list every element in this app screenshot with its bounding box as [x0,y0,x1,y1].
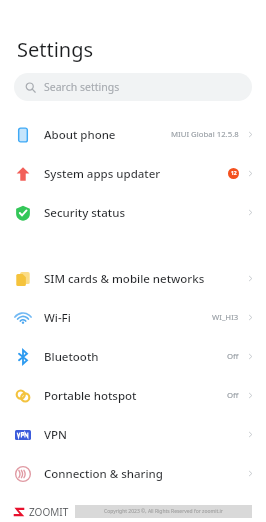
other: Connection & sharing [15,466,31,482]
staticText: VPN [44,427,68,443]
staticText: Settings [17,36,94,63]
staticText: Bluetooth [44,349,99,365]
staticText: Security status [44,205,125,221]
button[interactable]: System apps updater [0,154,266,193]
staticText: Off [227,390,239,401]
button[interactable]: VPN [0,415,266,454]
staticText: Copyright 2023 ©, All Rights Reserved fo… [104,508,223,515]
staticText: SIM cards & mobile networks [44,271,205,287]
other: VPN [15,427,31,443]
staticText: WI_HI3 [212,312,239,323]
staticText: Connection & sharing [44,466,163,482]
staticText: Portable hotspot [44,388,137,404]
other: System apps updater [15,166,31,182]
other: Bluetooth [15,349,31,365]
button[interactable]: SIM cards & mobile networks [0,259,266,298]
button[interactable]: Wi-Fi [0,298,266,337]
other: Security status [15,205,31,221]
other: Wi-Fi [15,310,31,326]
other: About phone [15,127,31,143]
staticText: ZOOMIT [29,505,69,519]
button[interactable]: Portable hotspot [0,376,266,415]
button[interactable]: Security status [0,193,266,232]
staticText: Off [227,351,239,362]
staticText: 12 [231,170,237,177]
button[interactable]: Search settings [14,73,252,101]
staticText: Wi-Fi [44,310,71,326]
other: Portable hotspot [15,388,31,404]
staticText: System apps updater [44,166,161,182]
staticText: Search settings [44,80,120,94]
button[interactable]: About phone [0,115,266,154]
other: SIM cards & mobile networks [15,271,31,287]
staticText: MIUI Global 12.5.8 [171,129,239,140]
button[interactable]: Bluetooth [0,337,266,376]
staticText: About phone [44,127,116,143]
button[interactable]: Connection & sharing [0,454,266,493]
